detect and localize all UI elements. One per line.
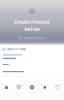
button[interactable]: Search bbox=[13, 84, 26, 96]
staticText: Create freezes bbox=[14, 18, 50, 25]
staticText: See how it works bbox=[17, 35, 46, 40]
button[interactable]: Home bbox=[0, 84, 13, 96]
button[interactable]: Compose bbox=[26, 84, 38, 96]
button[interactable]: Notifications bbox=[38, 84, 51, 96]
button[interactable]: See how it works bbox=[15, 34, 48, 41]
staticText: below bbox=[24, 25, 39, 32]
staticText: Account name bbox=[7, 47, 26, 51]
button[interactable]: Account name bbox=[0, 46, 64, 52]
button[interactable]: Profile bbox=[51, 84, 64, 96]
